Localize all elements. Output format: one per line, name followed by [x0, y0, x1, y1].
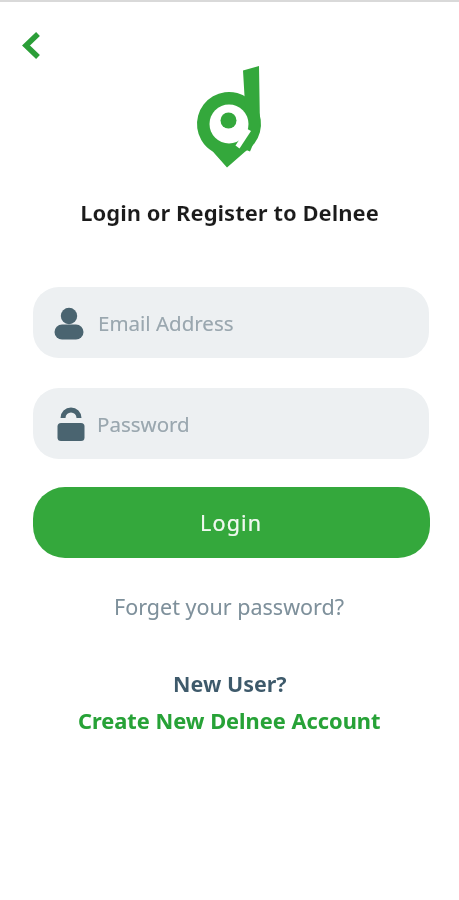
button[interactable]: Email Address — [33, 287, 429, 358]
staticText: Password — [97, 410, 190, 438]
staticText: New User? — [173, 669, 287, 698]
button[interactable] — [12, 26, 52, 66]
staticText: Email Address — [98, 309, 234, 337]
staticText: Login or Register to Delnee — [0, 197, 459, 227]
button[interactable]: Login — [33, 487, 430, 558]
staticText: Forget your password? — [114, 592, 345, 621]
staticText: Login — [200, 508, 263, 537]
button[interactable]: Password — [33, 388, 429, 459]
button[interactable]: Forget your password? — [108, 586, 351, 627]
staticText: Create New Delnee Account — [78, 706, 381, 736]
button[interactable]: Create New Delnee Account — [76, 704, 383, 738]
